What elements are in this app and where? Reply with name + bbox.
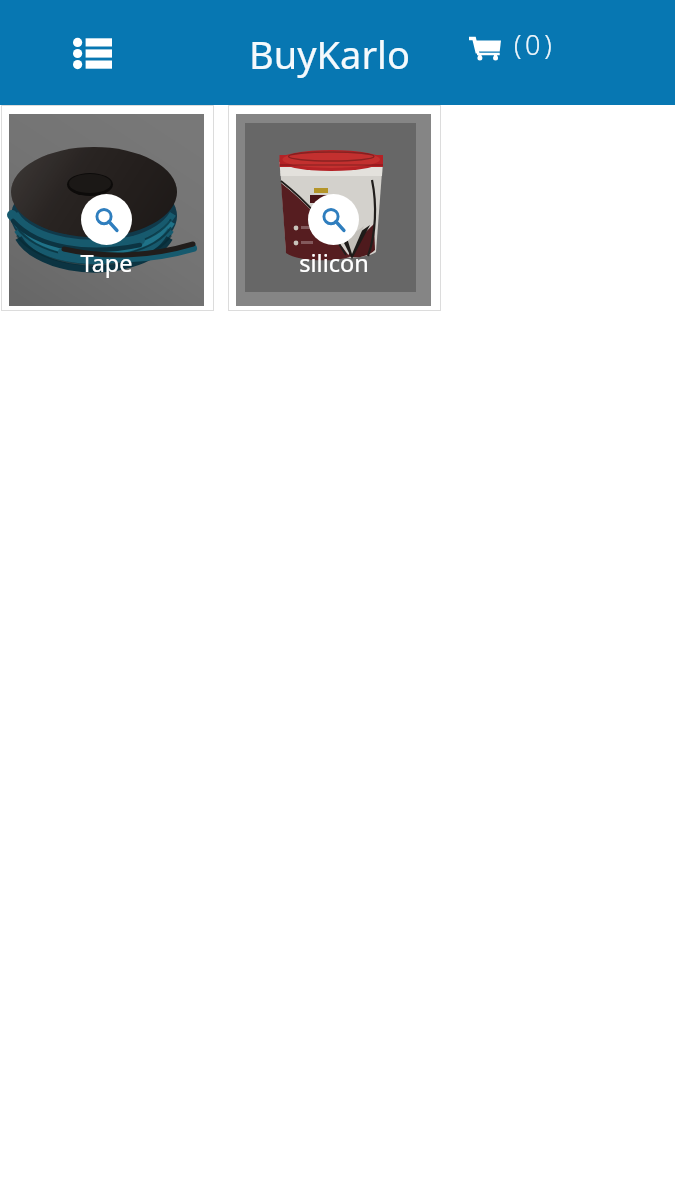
button[interactable]: Quick view silicon xyxy=(228,105,441,311)
staticText: ( 0 ) xyxy=(514,26,550,63)
button[interactable]: Shopping cart, 0 items xyxy=(460,24,564,76)
button[interactable]: Quick view silicon xyxy=(308,194,359,245)
button[interactable]: Quick view Tape xyxy=(81,194,132,245)
other: Cart xyxy=(469,36,501,61)
button[interactable]: Quick view Tape xyxy=(1,105,214,311)
staticText: BuyKarlo xyxy=(249,28,410,80)
button[interactable]: Menu xyxy=(61,26,124,81)
staticText: Tape xyxy=(80,247,133,279)
staticText: silicon xyxy=(299,247,369,279)
